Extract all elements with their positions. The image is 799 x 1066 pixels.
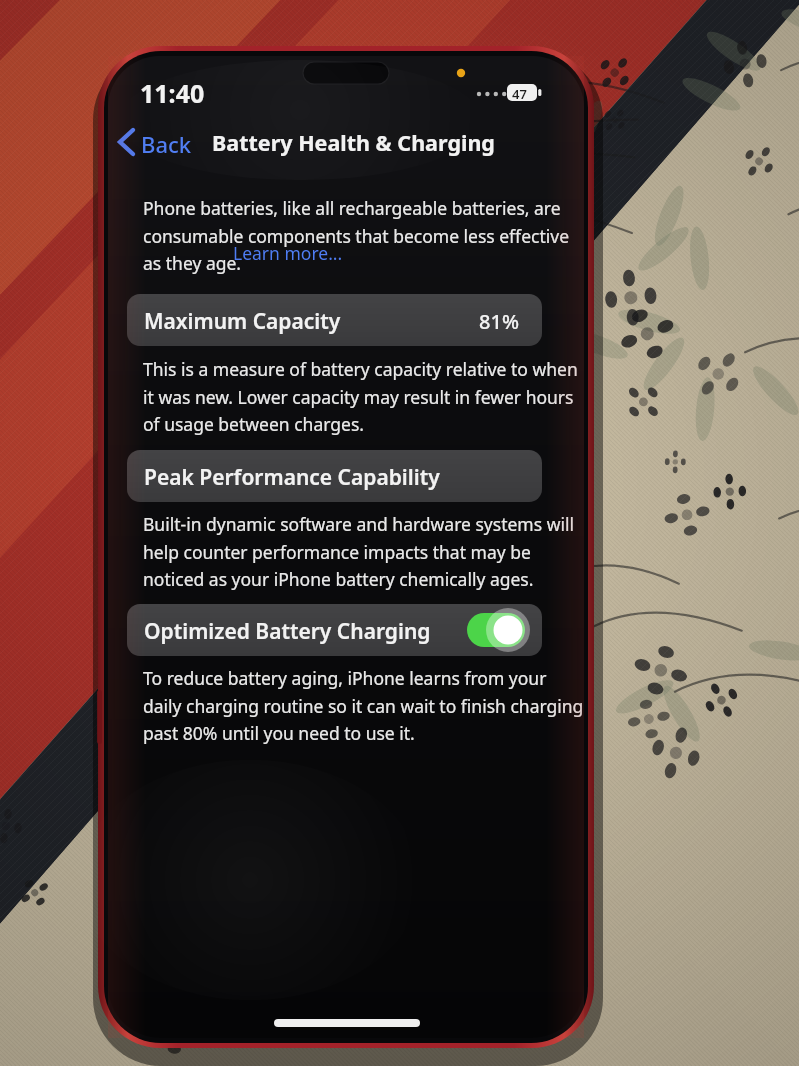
staticText: 47	[512, 85, 527, 103]
staticText: Back	[141, 129, 192, 159]
button[interactable]: Optimized Battery Charging toggle, on	[466, 612, 526, 648]
staticText: past 80% until you need to use it.	[143, 721, 415, 745]
staticText: Battery Health & Charging	[212, 128, 495, 157]
staticText: To reduce battery aging, iPhone learns f…	[143, 666, 547, 690]
button[interactable]	[127, 604, 542, 656]
staticText: consumable components that become less e…	[143, 224, 570, 248]
staticText: Optimized Battery Charging	[144, 617, 431, 646]
staticText: 81%	[479, 308, 519, 335]
button[interactable]: Back	[112, 124, 202, 160]
staticText: noticed as your iPhone battery chemicall…	[143, 567, 534, 591]
staticText: daily charging routine so it can wait to…	[143, 694, 584, 718]
staticText: of usage between charges.	[143, 412, 364, 436]
staticText: it was new. Lower capacity may result in…	[143, 385, 574, 409]
staticText: as they age.	[143, 251, 242, 275]
button[interactable]	[127, 450, 542, 502]
button[interactable]	[233, 240, 328, 262]
button[interactable]	[127, 294, 542, 346]
staticText: help counter performance impacts that ma…	[143, 540, 531, 564]
staticText: Learn more...	[233, 241, 343, 265]
staticText: Peak Performance Capability	[144, 463, 440, 492]
staticText: This is a measure of battery capacity re…	[143, 357, 578, 381]
staticText: 11:40	[140, 76, 205, 110]
staticText: Built-in dynamic software and hardware s…	[143, 512, 574, 536]
staticText: Maximum Capacity	[144, 307, 341, 336]
staticText: Phone batteries, like all rechargeable b…	[143, 196, 561, 220]
